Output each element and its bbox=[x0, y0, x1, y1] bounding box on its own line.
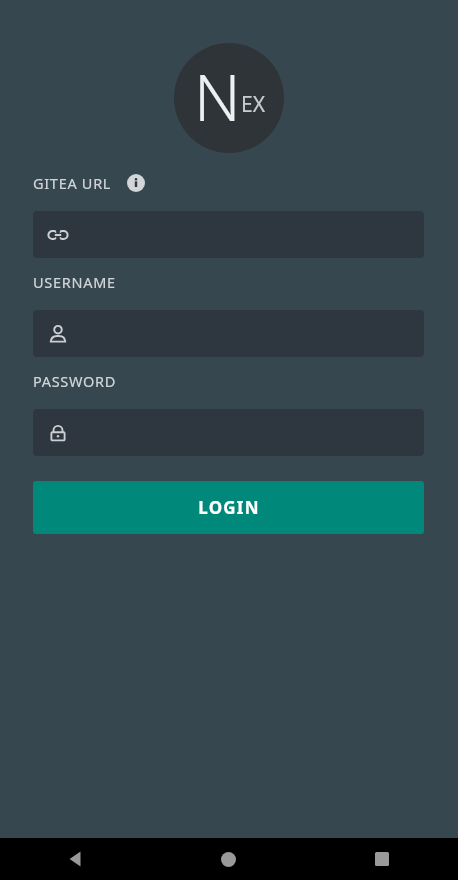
staticText: N bbox=[194, 53, 241, 140]
staticText: EX bbox=[241, 90, 265, 119]
staticText: PASSWORD bbox=[33, 371, 117, 391]
button[interactable]: Username bbox=[33, 310, 424, 357]
button[interactable]: Password bbox=[33, 409, 424, 456]
staticText: USERNAME bbox=[33, 272, 116, 292]
button[interactable]: Gitea URL bbox=[33, 211, 424, 258]
button[interactable]: Back bbox=[0, 838, 152, 880]
button[interactable]: Recent apps bbox=[305, 838, 458, 880]
staticText: GITEA URL bbox=[33, 173, 112, 193]
staticText: LOGIN bbox=[198, 496, 260, 519]
button[interactable]: Home bbox=[152, 838, 305, 880]
button[interactable]: LOGIN bbox=[33, 481, 424, 534]
button[interactable]: Information about Gitea URL bbox=[127, 174, 145, 192]
